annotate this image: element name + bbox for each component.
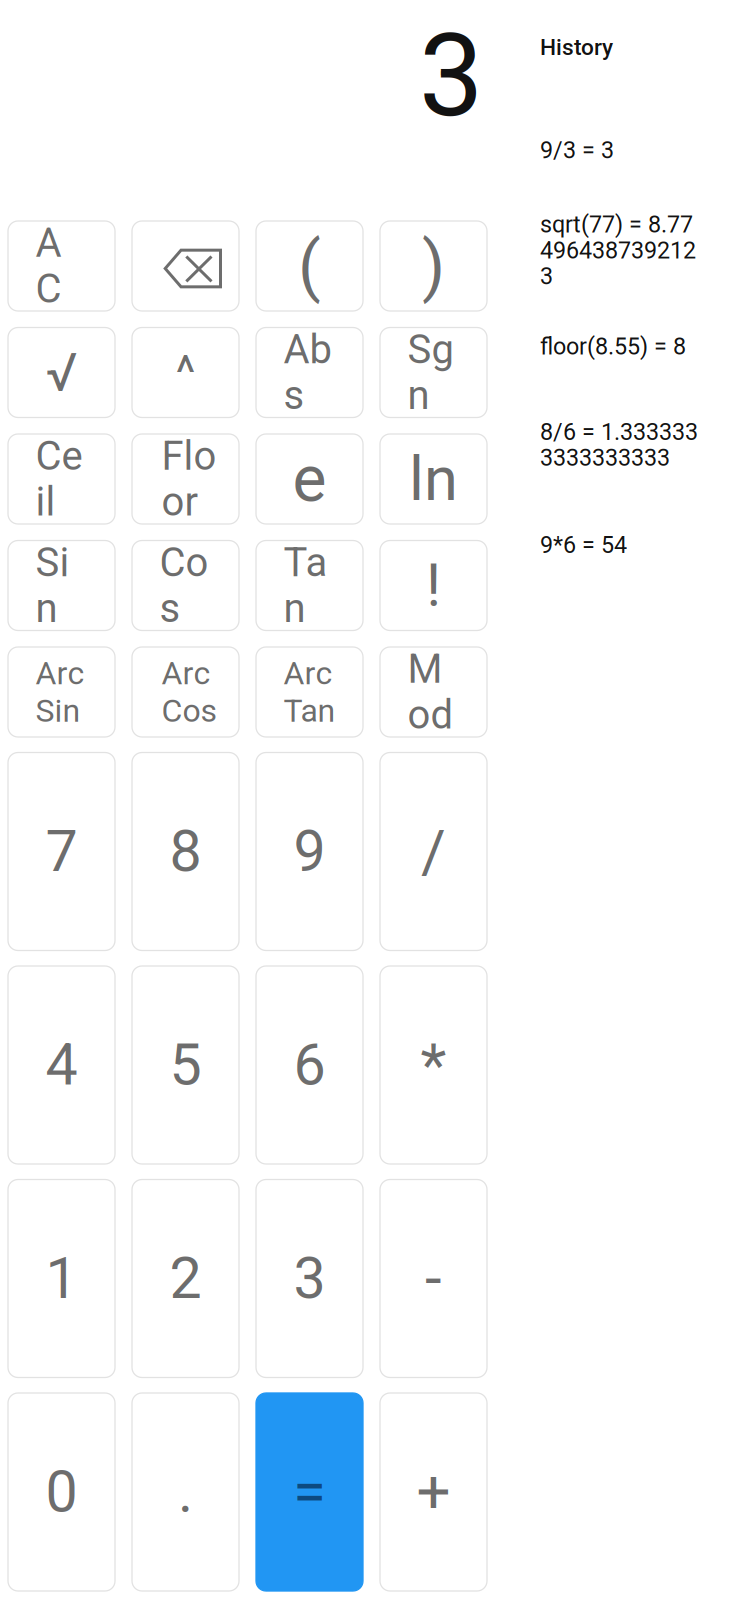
button[interactable]: Backspace: [132, 221, 239, 311]
staticText: 7: [45, 818, 77, 885]
staticText: (: [298, 227, 321, 305]
button[interactable]: ): [380, 221, 487, 311]
button[interactable]: !: [380, 540, 487, 630]
button[interactable]: +: [380, 1393, 487, 1591]
staticText: 3: [293, 1245, 325, 1312]
staticText: Arc Sin: [35, 654, 84, 729]
staticText: Arc Tan: [283, 654, 335, 729]
staticText: ln: [409, 443, 458, 515]
staticText: 3: [419, 9, 483, 143]
staticText: A C: [35, 220, 61, 312]
staticText: .: [178, 1458, 193, 1526]
staticText: 8: [169, 818, 201, 885]
staticText: ): [422, 227, 445, 305]
staticText: 8/6 = 1.333333 3333333333: [540, 418, 698, 471]
staticText: =: [293, 1457, 326, 1527]
button[interactable]: M od: [380, 647, 487, 737]
staticText: !: [426, 551, 441, 620]
staticText: 5: [169, 1031, 201, 1099]
staticText: 9/3 = 3: [540, 137, 614, 164]
staticText: 0: [45, 1458, 77, 1526]
staticText: sqrt(77) = 8.77 496438739212 3: [540, 211, 696, 290]
staticText: ^: [175, 344, 195, 401]
staticText: √: [45, 341, 77, 404]
button[interactable]: Co s: [132, 540, 239, 630]
button[interactable]: 1: [8, 1179, 115, 1377]
staticText: 4: [45, 1031, 77, 1099]
button[interactable]: Flo or: [132, 434, 239, 524]
button[interactable]: Ta n: [256, 540, 363, 630]
staticText: 2: [169, 1245, 201, 1312]
button[interactable]: e: [256, 434, 363, 524]
button[interactable]: ln: [380, 434, 487, 524]
button[interactable]: 9: [256, 752, 363, 950]
staticText: 1: [45, 1245, 77, 1312]
staticText: 6: [293, 1031, 325, 1099]
staticText: +: [416, 1457, 450, 1527]
button[interactable]: 5: [132, 966, 239, 1164]
button[interactable]: /: [380, 752, 487, 950]
staticText: Co s: [159, 539, 208, 632]
button[interactable]: Arc Cos: [132, 647, 239, 737]
staticText: Ab s: [283, 326, 331, 419]
button[interactable]: (: [256, 221, 363, 311]
button[interactable]: A C: [8, 221, 115, 311]
staticText: *: [420, 1030, 446, 1100]
button[interactable]: 3: [256, 1179, 363, 1377]
button[interactable]: 0: [8, 1393, 115, 1591]
staticText: /: [421, 816, 446, 887]
button[interactable]: *: [380, 966, 487, 1164]
button[interactable]: .: [132, 1393, 239, 1591]
button[interactable]: -: [380, 1179, 487, 1377]
button[interactable]: 7: [8, 752, 115, 950]
button[interactable]: 2: [132, 1179, 239, 1377]
staticText: Ta n: [283, 539, 327, 632]
staticText: Arc Cos: [161, 654, 217, 729]
button[interactable]: Ab s: [256, 327, 363, 417]
staticText: History: [540, 34, 613, 61]
staticText: -: [425, 1243, 442, 1314]
staticText: Si n: [35, 539, 69, 632]
button[interactable]: 6: [256, 966, 363, 1164]
staticText: Sg n: [407, 326, 453, 419]
staticText: 9*6 = 54: [540, 531, 627, 559]
button[interactable]: √: [8, 327, 115, 417]
staticText: 9: [293, 818, 325, 885]
staticText: e: [292, 441, 326, 516]
button[interactable]: Sg n: [380, 327, 487, 417]
button[interactable]: Arc Sin: [8, 647, 115, 737]
button[interactable]: Si n: [8, 540, 115, 630]
staticText: floor(8.55) = 8: [540, 333, 686, 360]
button[interactable]: 4: [8, 966, 115, 1164]
staticText: M od: [407, 646, 453, 738]
button[interactable]: Ce il: [8, 434, 115, 524]
button[interactable]: Arc Tan: [256, 647, 363, 737]
staticText: Flo or: [161, 433, 216, 525]
staticText: Ce il: [35, 433, 82, 525]
button[interactable]: ^: [132, 327, 239, 417]
button[interactable]: 8: [132, 752, 239, 950]
button[interactable]: =: [256, 1393, 363, 1591]
